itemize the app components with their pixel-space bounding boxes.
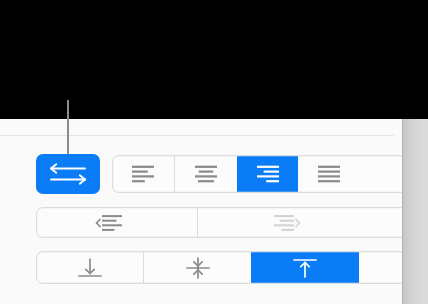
button[interactable]: Decrease indent xyxy=(36,207,197,238)
button[interactable]: Align right xyxy=(237,155,298,193)
button[interactable]: Text direction xyxy=(36,154,100,194)
button[interactable]: Align bottom xyxy=(36,251,143,284)
button[interactable]: Align center xyxy=(175,155,237,193)
button[interactable]: Justify xyxy=(298,155,359,193)
button[interactable]: Align left xyxy=(112,155,174,193)
button[interactable]: Increase indent xyxy=(198,207,359,238)
button[interactable]: Align middle xyxy=(144,251,251,284)
button[interactable]: Align top xyxy=(251,251,359,284)
